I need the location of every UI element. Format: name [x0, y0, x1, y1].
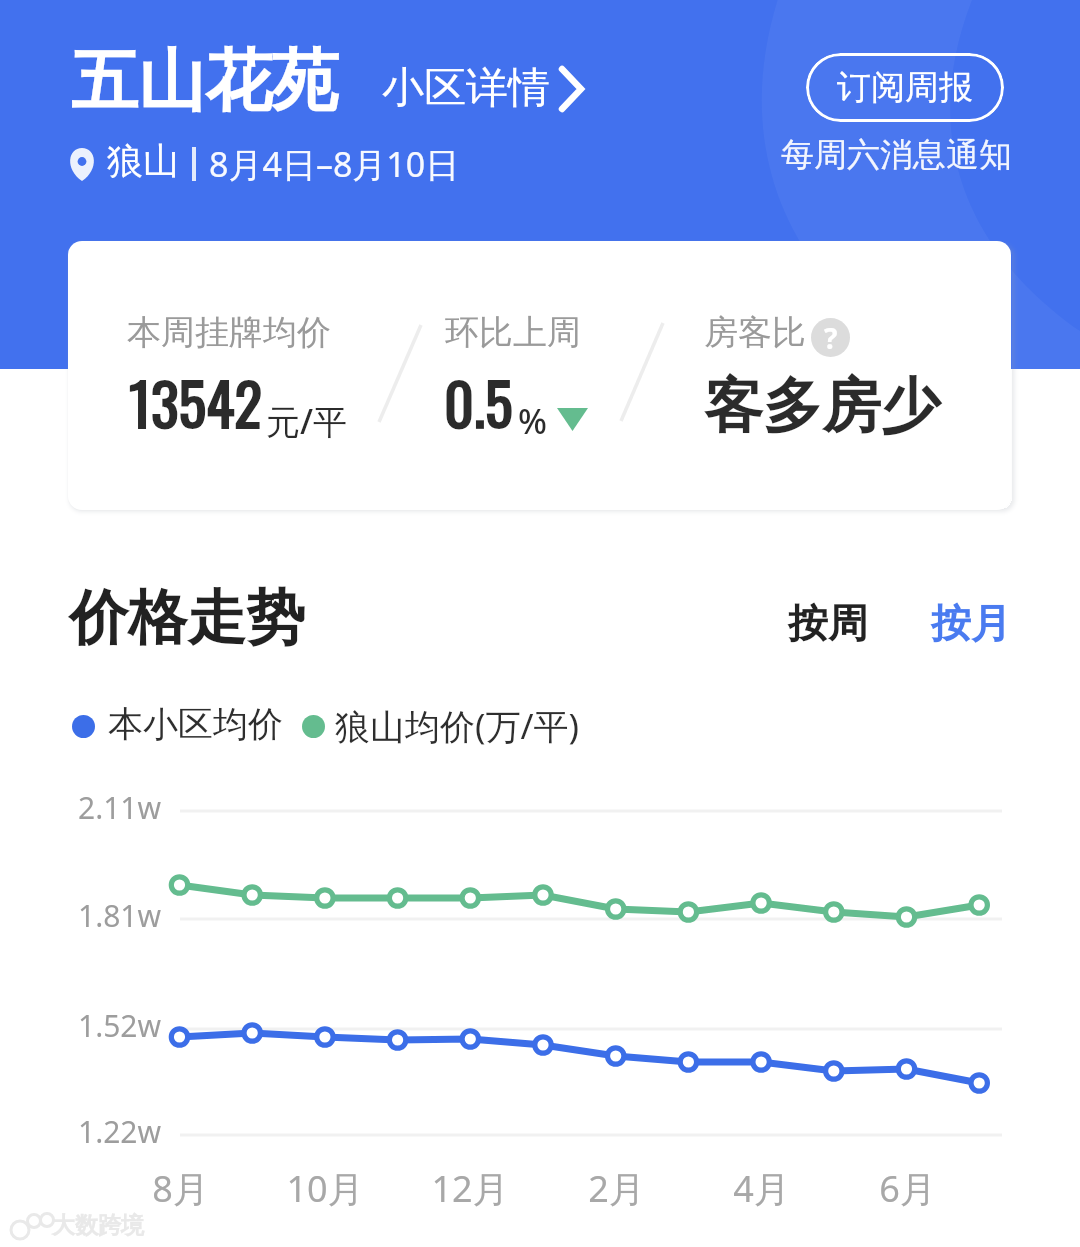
staticText: 4月 [733, 1164, 790, 1213]
button[interactable]: 订阅周报 [806, 53, 1004, 122]
staticText: 1.52w [78, 1005, 162, 1046]
staticText: 1.81w [78, 895, 162, 936]
staticText: 环比上周 [445, 311, 581, 354]
staticText: 0.5 [444, 359, 513, 445]
staticText: 五山花苑 [71, 39, 339, 123]
staticText: 10月 [286, 1164, 364, 1213]
staticText: 狼山 [107, 138, 179, 183]
staticText: 本周挂牌均价 [127, 311, 331, 354]
staticText: 按周 [788, 598, 868, 648]
staticText: 房客比 [704, 311, 806, 354]
staticText: 每周六消息通知 [781, 134, 1012, 176]
staticText: 8月4日–8月10日 [209, 141, 460, 187]
staticText: 2.11w [78, 787, 162, 828]
staticText: 订阅周报 [837, 66, 973, 109]
staticText: 6月 [879, 1164, 936, 1213]
staticText: 价格走势 [69, 581, 305, 655]
staticText: ? [824, 319, 838, 357]
staticText: 按月 [931, 598, 1011, 648]
button[interactable]: 按周 [772, 590, 884, 656]
staticText: % [518, 398, 547, 444]
staticText: 8月 [152, 1164, 209, 1213]
staticText: 13542 [129, 359, 262, 445]
button[interactable]: 帮助 [811, 318, 850, 357]
button[interactable]: 按月 [915, 590, 1027, 656]
staticText: 狼山均价(万/平) [335, 702, 580, 750]
staticText: 元/平 [266, 398, 348, 444]
button[interactable]: 小区详情 [382, 62, 587, 115]
staticText: 2月 [588, 1164, 645, 1213]
staticText: 小区详情 [382, 62, 550, 115]
staticText: 12月 [431, 1164, 509, 1213]
staticText: 大数跨境 [52, 1211, 144, 1240]
staticText: 1.22w [78, 1111, 162, 1152]
staticText: 客多房少 [704, 369, 940, 443]
staticText: 本小区均价 [108, 702, 283, 746]
